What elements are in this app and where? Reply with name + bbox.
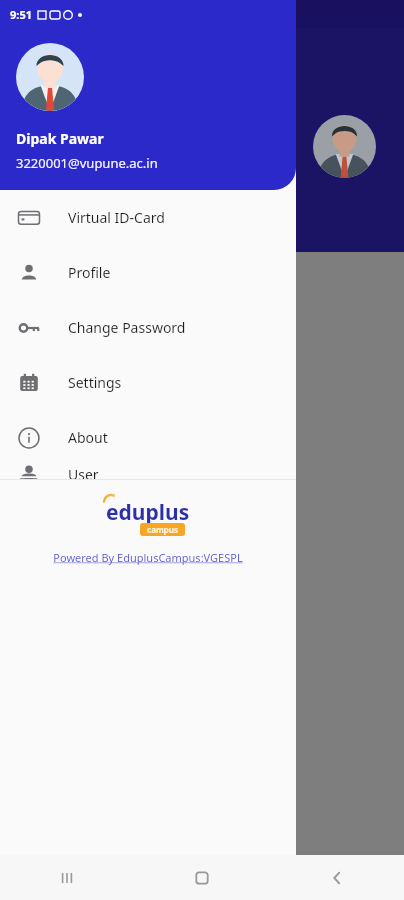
staticText: Change Password bbox=[68, 318, 186, 337]
button[interactable]: User bbox=[0, 465, 296, 479]
button[interactable]: Profile bbox=[0, 245, 296, 300]
staticText: About bbox=[68, 428, 108, 447]
button[interactable]: Back bbox=[269, 855, 404, 900]
button[interactable]: Change Password bbox=[0, 300, 296, 355]
button[interactable]: Recents bbox=[0, 855, 134, 900]
button[interactable]: Powered By EduplusCampus:VGESPL bbox=[53, 550, 243, 565]
staticText: campus bbox=[147, 524, 178, 535]
staticText: 9:51 bbox=[10, 7, 32, 22]
staticText: User bbox=[68, 465, 99, 479]
other: Profile avatar bbox=[313, 115, 376, 178]
staticText: Settings bbox=[68, 373, 122, 392]
staticText: Profile bbox=[68, 263, 111, 282]
staticText: Virtual ID-Card bbox=[68, 208, 165, 227]
button[interactable]: Virtual ID-Card bbox=[0, 190, 296, 245]
button[interactable]: Home bbox=[134, 855, 269, 900]
button[interactable]: About bbox=[0, 410, 296, 465]
staticText: Dipak Pawar bbox=[16, 129, 104, 148]
button[interactable]: Settings bbox=[0, 355, 296, 410]
staticText: 3220001@vupune.ac.in bbox=[16, 154, 158, 172]
staticText: eduplus bbox=[106, 498, 190, 527]
